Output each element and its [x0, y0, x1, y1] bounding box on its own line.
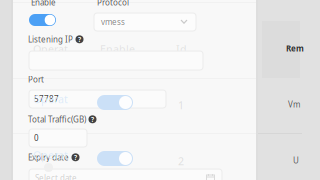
- staticText: Vm: [288, 99, 300, 110]
- staticText: Port: [28, 74, 44, 85]
- staticText: ?: [91, 115, 94, 124]
- staticText: vmess: [101, 17, 125, 27]
- staticText: Enable: [31, 0, 56, 8]
- staticText: Total Traffic(GB): [28, 114, 86, 125]
- staticText: Operat: [33, 42, 68, 56]
- staticText: ?: [74, 153, 77, 162]
- staticText: 0: [34, 133, 39, 143]
- staticText: U: [293, 155, 299, 166]
- staticText: Id: [176, 42, 187, 56]
- button[interactable]: Enable: [29, 14, 56, 26]
- staticText: 57787: [34, 94, 59, 104]
- staticText: ?: [78, 35, 81, 44]
- staticText: 2: [178, 154, 184, 168]
- staticText: Listening IP: [28, 34, 73, 45]
- staticText: Operat: [33, 148, 68, 162]
- staticText: 1: [178, 98, 184, 112]
- staticText: Enable: [100, 42, 135, 56]
- staticText: Select date: [35, 173, 77, 180]
- staticText: Operat: [33, 92, 68, 106]
- staticText: Expiry date: [28, 152, 69, 163]
- button[interactable]: vmess: [94, 13, 196, 31]
- staticText: Protocol: [97, 0, 129, 8]
- staticText: Rem: [286, 43, 304, 54]
